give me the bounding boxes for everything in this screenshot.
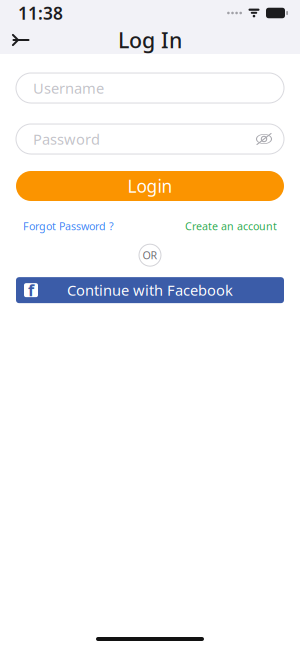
button[interactable]: Login xyxy=(16,171,284,201)
staticText: Log In xyxy=(118,26,182,54)
staticText: Forgot Password ? xyxy=(23,219,114,233)
staticText: f xyxy=(28,279,34,301)
staticText: Login xyxy=(127,174,172,197)
button[interactable]: Show password xyxy=(251,126,277,152)
staticText: Continue with Facebook xyxy=(67,280,233,300)
button[interactable]: Back xyxy=(0,25,42,55)
staticText: Username xyxy=(33,78,104,98)
staticText: Create an account xyxy=(185,219,277,233)
staticText: OR xyxy=(142,248,157,262)
button[interactable]: Create an account xyxy=(185,216,277,236)
staticText: 11:38 xyxy=(18,1,63,24)
staticText: Password xyxy=(33,129,100,149)
button[interactable]: Continue with Facebook xyxy=(16,277,284,303)
button[interactable]: Forgot Password ? xyxy=(23,216,114,236)
